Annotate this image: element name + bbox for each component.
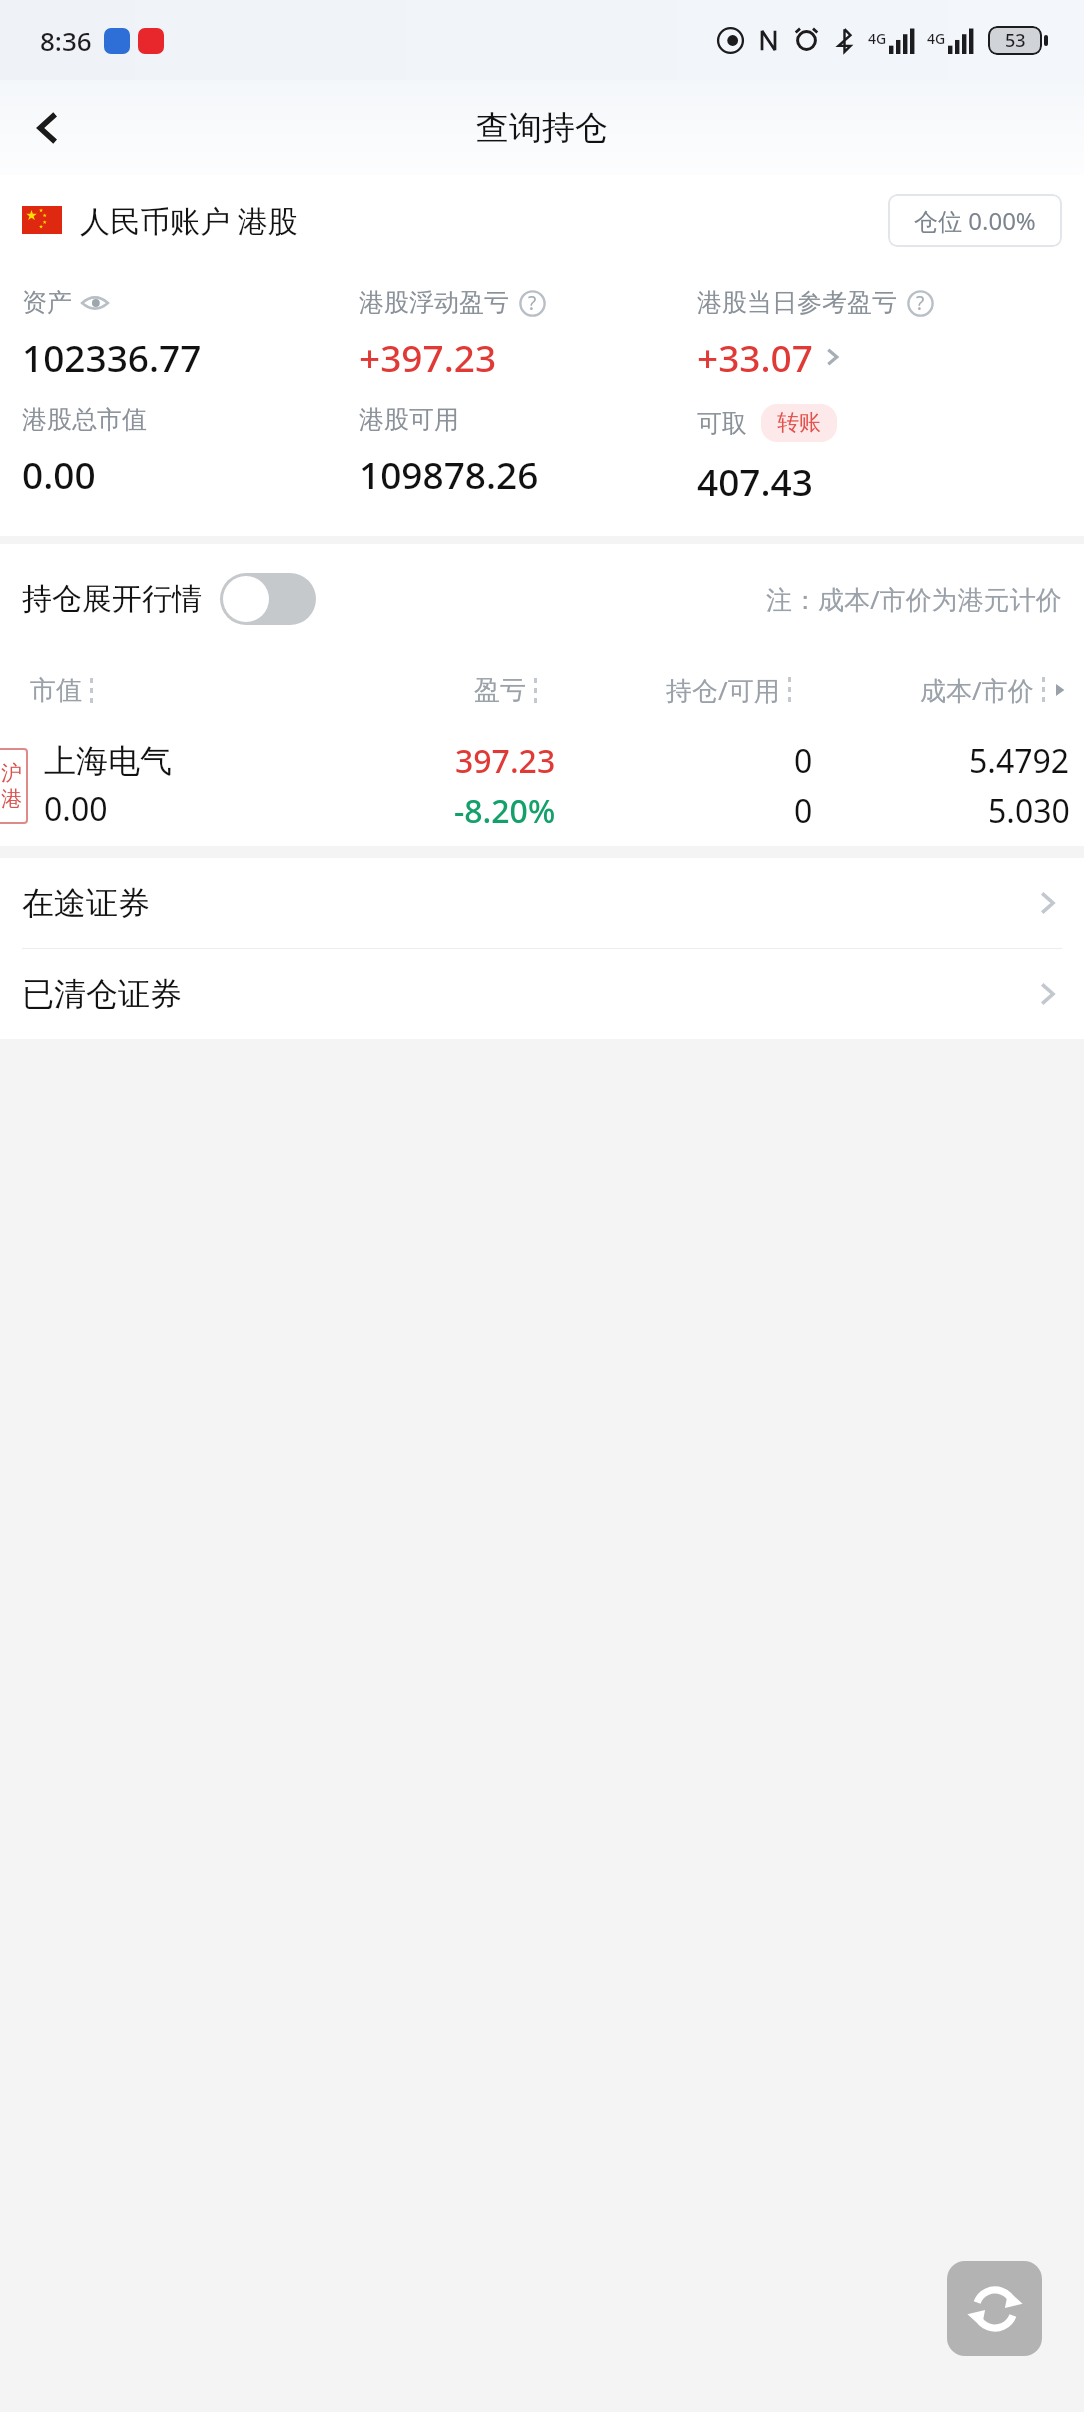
staticText: 人民币账户 港股 — [80, 200, 298, 241]
button[interactable]: Toggle visibility — [80, 288, 110, 318]
staticText: 港股当日参考盈亏 — [697, 287, 897, 318]
button[interactable]: +33.07 — [697, 332, 843, 382]
staticText: 0 — [794, 739, 813, 783]
staticText: 8:36 — [40, 23, 92, 58]
button[interactable]: 持仓展开行情 — [22, 573, 316, 625]
staticText: 102336.77 — [22, 332, 202, 382]
staticText: +397.23 — [359, 332, 497, 382]
button[interactable]: Refresh — [947, 2261, 1042, 2356]
staticText: 资产 — [22, 287, 72, 318]
staticText: 沪 — [1, 760, 22, 786]
staticText: 仓位 0.00% — [914, 204, 1036, 237]
staticText: 5.030 — [988, 789, 1070, 833]
staticText: 查询持仓 — [476, 107, 608, 149]
staticText: 0 — [794, 789, 813, 833]
button[interactable]: 成本/市价 — [792, 672, 1046, 708]
staticText: +33.07 — [697, 332, 813, 382]
button[interactable]: Help — [517, 288, 547, 318]
button[interactable]: 在途证券 — [0, 858, 1084, 948]
staticText: 港股浮动盈亏 — [359, 287, 509, 318]
staticText: 注：成本/市价为港元计价 — [766, 581, 1062, 617]
staticText: 成本/市价 — [920, 672, 1034, 708]
button[interactable]: 已清仓证券 — [0, 949, 1084, 1039]
staticText: 市值 — [30, 674, 82, 707]
button[interactable]: 沪 — [0, 726, 1084, 846]
button[interactable]: 市值 — [30, 674, 284, 707]
button[interactable]: Back — [18, 97, 80, 159]
staticText: 上海电气 — [44, 741, 172, 781]
staticText: 5.4792 — [969, 739, 1070, 783]
staticText: 4G — [868, 29, 887, 48]
staticText: 在途证券 — [22, 883, 150, 923]
staticText: 109878.26 — [359, 449, 539, 499]
staticText: 港股总市值 — [22, 404, 147, 435]
button[interactable]: 持仓/可用 — [538, 672, 792, 708]
staticText: 0.00 — [44, 787, 108, 831]
staticText: 可取 — [697, 408, 747, 439]
staticText: 已清仓证券 — [22, 974, 182, 1014]
button[interactable]: 转账 — [761, 404, 837, 442]
staticText: ? — [916, 290, 925, 316]
staticText: 407.43 — [697, 456, 813, 506]
staticText: 港股可用 — [359, 404, 459, 435]
button[interactable]: 仓位 0.00% — [888, 194, 1062, 247]
staticText: 0.00 — [22, 449, 96, 499]
staticText: 港 — [1, 786, 22, 812]
staticText: 盈亏 — [474, 674, 526, 707]
staticText: 转账 — [777, 409, 821, 437]
staticText: ? — [528, 290, 537, 316]
staticText: 持仓展开行情 — [22, 580, 202, 618]
staticText: 4G — [927, 29, 946, 48]
staticText: 持仓/可用 — [666, 672, 780, 708]
staticText: 53 — [1005, 28, 1026, 53]
button[interactable]: 盈亏 — [284, 674, 538, 707]
button[interactable]: Help — [905, 288, 935, 318]
staticText: 397.23 — [455, 739, 556, 783]
staticText: -8.20% — [454, 789, 556, 833]
